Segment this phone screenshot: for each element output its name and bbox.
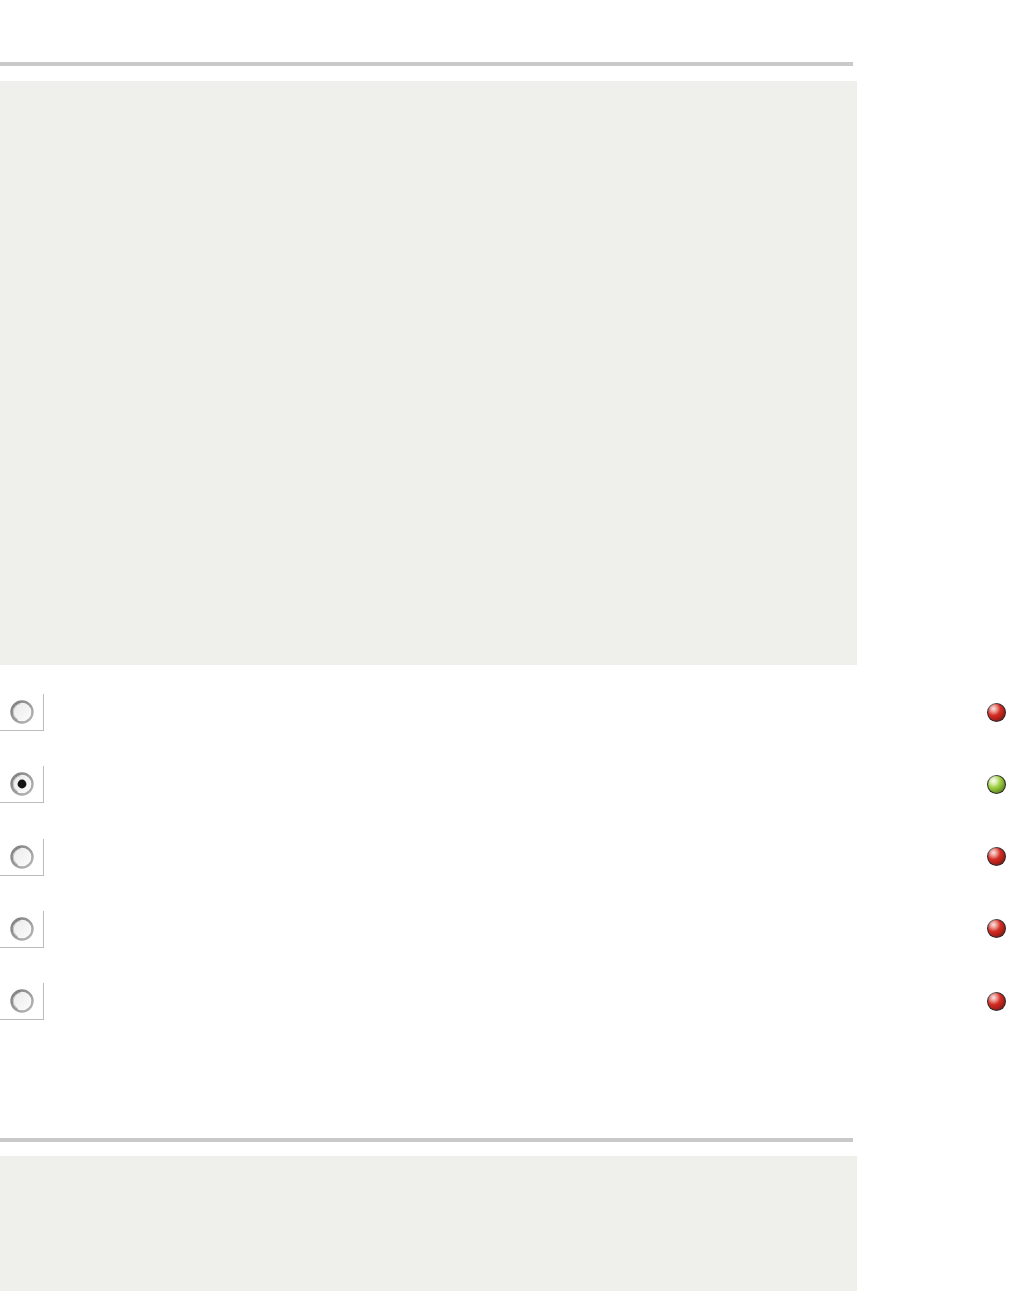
button[interactable]: Option 1 — [0, 694, 44, 731]
button[interactable]: Option 3 — [0, 839, 44, 876]
button[interactable]: Option 5 — [0, 983, 44, 1020]
button[interactable]: Option 2 — [0, 766, 44, 803]
button[interactable]: Option 4 — [0, 911, 44, 948]
